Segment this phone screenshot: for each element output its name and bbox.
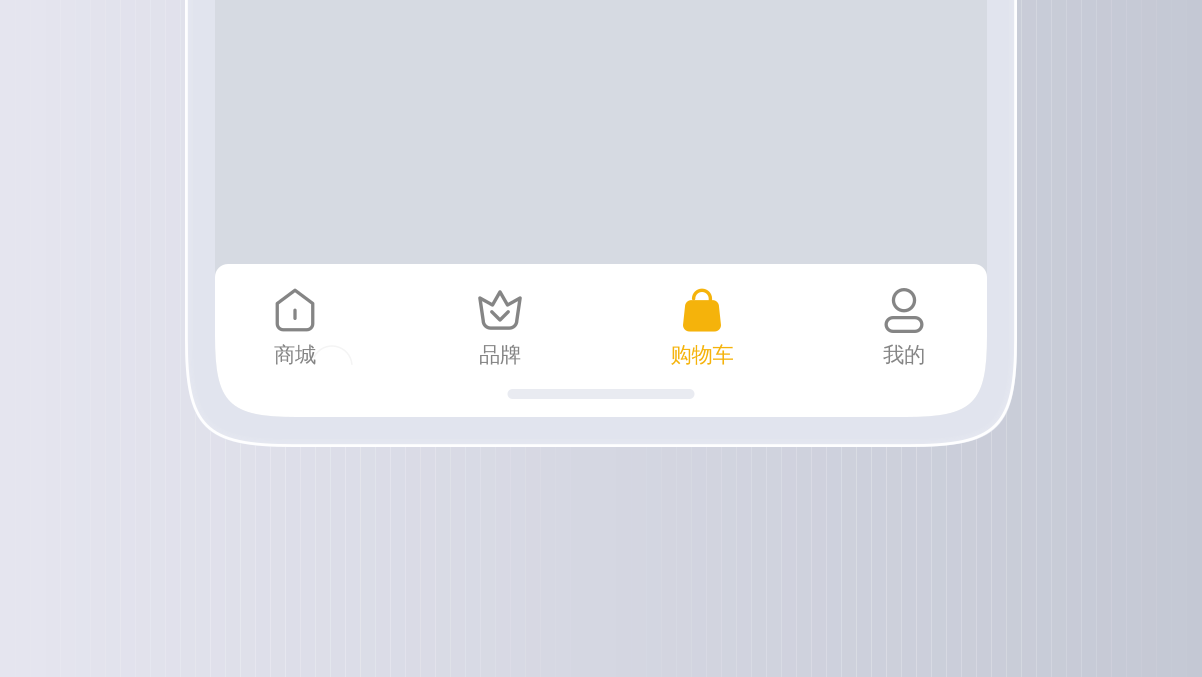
button[interactable]: 购物车 xyxy=(627,288,777,366)
staticText: 我的 xyxy=(883,342,925,368)
button[interactable]: 我的 xyxy=(829,288,979,366)
staticText: 商城 xyxy=(274,342,316,368)
staticText: 购物车 xyxy=(670,342,733,368)
button[interactable]: 商城 xyxy=(220,288,370,366)
button[interactable]: 品牌 xyxy=(425,288,575,366)
staticText: 品牌 xyxy=(479,342,521,368)
